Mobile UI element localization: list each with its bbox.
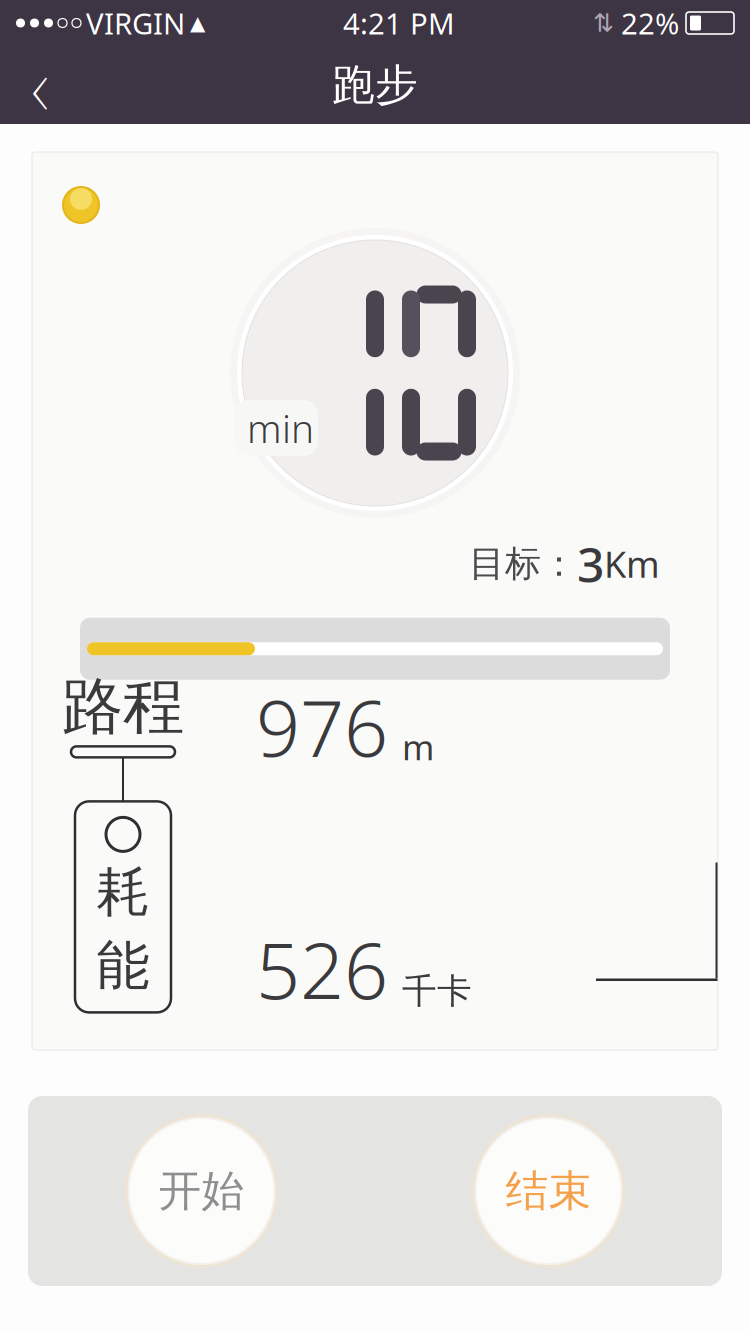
staticText: 路程 bbox=[62, 669, 184, 744]
button[interactable]: 结束 bbox=[471, 1114, 625, 1268]
staticText: ▲ bbox=[190, 12, 205, 34]
staticText: min bbox=[247, 402, 314, 454]
staticText: ⇅ bbox=[593, 9, 614, 37]
staticText: 4:21 PM bbox=[343, 3, 455, 42]
button[interactable]: 开始 bbox=[124, 1114, 278, 1268]
staticText: 能 bbox=[96, 933, 149, 998]
staticText: 开始 bbox=[158, 1165, 244, 1217]
staticText: ‹ bbox=[31, 30, 49, 140]
staticText: 跑步 bbox=[332, 59, 418, 111]
staticText: 526 bbox=[256, 918, 388, 1020]
staticText: 目标： bbox=[469, 542, 577, 586]
staticText: m bbox=[402, 724, 434, 770]
button[interactable]: Back bbox=[0, 49, 80, 121]
staticText: 3 bbox=[577, 532, 604, 596]
staticText: 结束 bbox=[505, 1165, 591, 1217]
staticText: 耗 bbox=[96, 859, 149, 925]
staticText: 976 bbox=[256, 675, 388, 778]
staticText: 22% bbox=[621, 3, 679, 42]
staticText: 千卡 bbox=[402, 970, 472, 1012]
staticText: Km bbox=[604, 540, 660, 588]
staticText: VIRGIN bbox=[86, 3, 185, 42]
